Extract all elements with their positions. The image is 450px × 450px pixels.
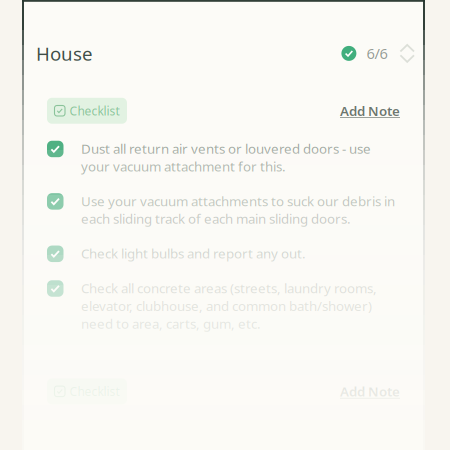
staticText: Check light bulbs and report any out. (81, 244, 306, 262)
staticText: 6/6 (366, 44, 387, 63)
button[interactable]: Collapse section (387, 44, 415, 63)
button[interactable]: Checklist (47, 378, 127, 404)
button[interactable]: Use your vacuum attachments to suck our … (47, 192, 400, 227)
staticText: Add Note (340, 102, 400, 120)
staticText: Checklist (69, 383, 119, 399)
staticText: Add Note (340, 382, 400, 400)
staticText: Use your vacuum attachments to suck our … (81, 192, 395, 227)
staticText: Checklist (69, 103, 119, 119)
button[interactable]: Check all concrete areas (streets, laund… (47, 279, 400, 332)
button[interactable]: Checklist (47, 98, 127, 124)
button[interactable]: Check light bulbs and report any out. (47, 244, 400, 262)
staticText: House (36, 41, 93, 66)
button[interactable]: Add Note (340, 102, 400, 120)
button[interactable]: Dust all return air vents or louvered do… (47, 140, 400, 175)
staticText: Dust all return air vents or louvered do… (81, 140, 371, 175)
staticText: Check all concrete areas (streets, laund… (81, 279, 377, 332)
button[interactable]: Add Note (340, 382, 400, 400)
